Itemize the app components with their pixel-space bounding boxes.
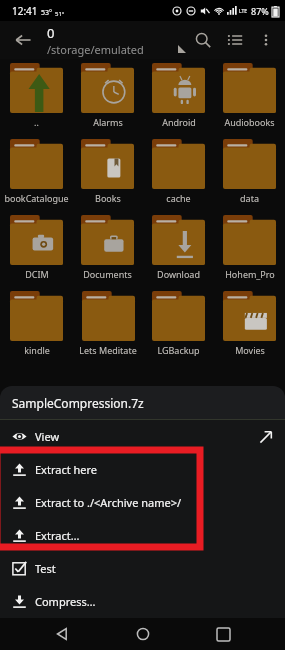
staticText: Alarms bbox=[93, 116, 123, 128]
button[interactable]: Home bbox=[125, 618, 161, 650]
button[interactable]: kindle bbox=[0, 291, 72, 367]
staticText: 0 bbox=[47, 24, 55, 42]
button[interactable]: data bbox=[214, 139, 285, 215]
button[interactable]: Audiobooks bbox=[214, 63, 285, 139]
button[interactable]: Extract here bbox=[0, 453, 285, 486]
button[interactable]: View bbox=[0, 420, 285, 453]
staticText: Extract… bbox=[35, 528, 80, 543]
staticText: Hohem_Pro bbox=[225, 268, 275, 280]
button[interactable]: Books bbox=[72, 139, 143, 215]
staticText: LTE bbox=[239, 8, 248, 15]
button[interactable]: View mode bbox=[219, 24, 251, 56]
staticText: Android bbox=[162, 116, 196, 128]
button[interactable]: Movies bbox=[214, 291, 285, 367]
staticText: 53° bbox=[41, 8, 53, 18]
staticText: Audiobooks bbox=[224, 116, 275, 128]
button[interactable]: Test bbox=[0, 552, 285, 585]
staticText: Extract here bbox=[35, 462, 98, 477]
staticText: Extract to ./<Archive name>/ bbox=[35, 495, 182, 510]
button[interactable]: Extract… bbox=[0, 519, 285, 552]
staticText: Books bbox=[95, 192, 121, 204]
staticText: kindle bbox=[24, 344, 50, 356]
staticText: 12:41 bbox=[12, 4, 38, 18]
staticText: .. bbox=[34, 116, 39, 128]
button[interactable]: bookCatalogue bbox=[0, 139, 72, 215]
staticText: LGBackup bbox=[157, 344, 200, 356]
button[interactable]: cache bbox=[143, 139, 214, 215]
button[interactable]: Android bbox=[143, 63, 214, 139]
staticText: Lets Meditate bbox=[79, 344, 137, 356]
staticText: Movies bbox=[235, 344, 265, 356]
button[interactable]: Extract to ./<Archive name>/ bbox=[0, 486, 285, 519]
staticText: /storage/emulated bbox=[47, 42, 144, 57]
staticText: data bbox=[240, 192, 259, 204]
staticText: 87% bbox=[251, 5, 269, 17]
button[interactable]: Alarms bbox=[72, 63, 143, 139]
button[interactable]: LGBackup bbox=[143, 291, 214, 367]
staticText: DCIM bbox=[25, 268, 49, 280]
button[interactable]: Search bbox=[187, 24, 219, 56]
button[interactable]: Hohem_Pro bbox=[214, 215, 285, 291]
button[interactable]: Download bbox=[143, 215, 214, 291]
staticText: Test bbox=[35, 561, 56, 576]
staticText: SampleCompression.7z bbox=[12, 395, 144, 411]
button[interactable]: DCIM bbox=[0, 215, 72, 291]
staticText: bookCatalogue bbox=[4, 192, 69, 204]
staticText: 51° bbox=[55, 10, 65, 18]
button[interactable]: Back bbox=[44, 618, 80, 650]
button[interactable]: Compress… bbox=[0, 585, 285, 618]
staticText: View bbox=[35, 429, 60, 444]
button[interactable]: Back bbox=[6, 23, 40, 57]
button[interactable]: Recents bbox=[205, 618, 241, 650]
staticText: Documents bbox=[83, 268, 132, 280]
staticText: cache bbox=[166, 192, 191, 204]
button[interactable]: Lets Meditate bbox=[72, 291, 143, 367]
button[interactable]: .. bbox=[0, 63, 72, 139]
staticText: Compress… bbox=[35, 594, 96, 609]
staticText: Download bbox=[157, 268, 200, 280]
button[interactable]: More options bbox=[251, 25, 281, 55]
other: Open externally bbox=[259, 430, 273, 444]
button[interactable]: Documents bbox=[72, 215, 143, 291]
